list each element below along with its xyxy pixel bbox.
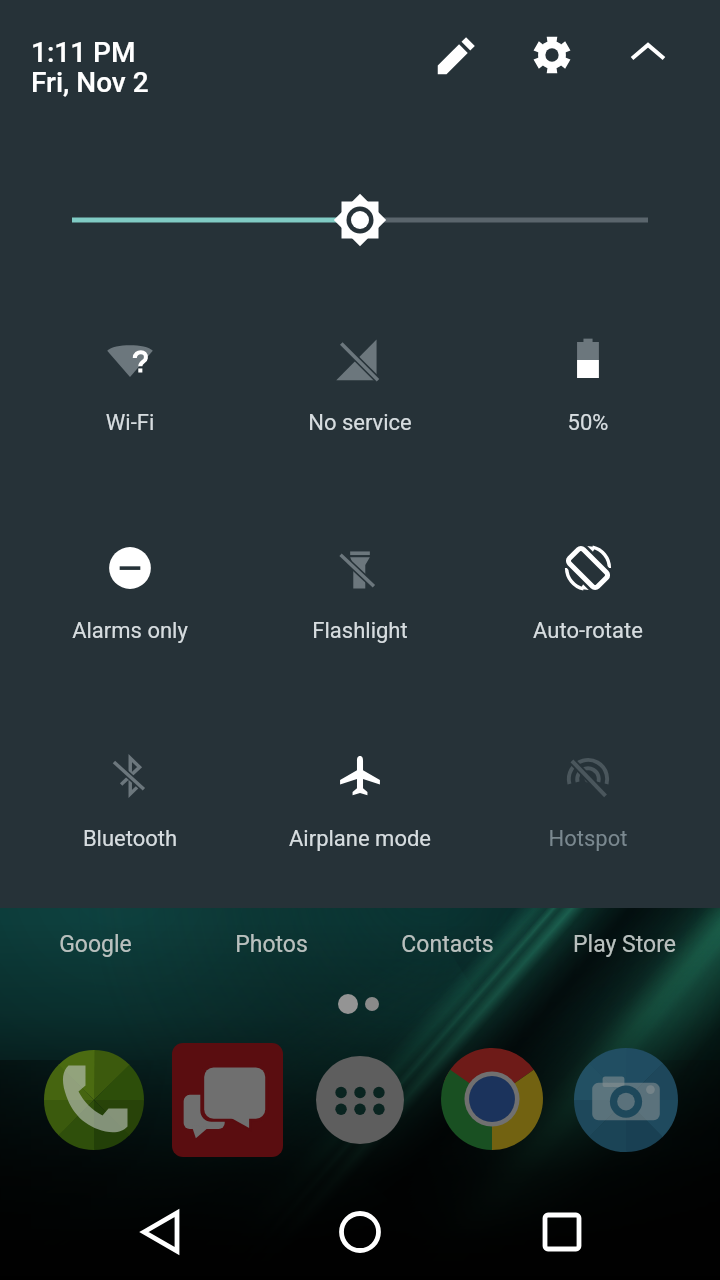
button[interactable]: Messaging: [172, 1043, 283, 1157]
staticText: 1:11 PM: [31, 36, 136, 69]
button[interactable]: No service: [255, 310, 465, 455]
staticText: Hotspot: [483, 826, 693, 852]
staticText: 50%: [483, 410, 693, 436]
button[interactable]: Apps: [316, 1056, 404, 1144]
button[interactable]: Phone: [44, 1050, 144, 1150]
button[interactable]: Alarms only: [25, 518, 235, 663]
button[interactable]: Recents: [514, 1184, 610, 1280]
button[interactable]: Hotspot: [483, 726, 693, 871]
staticText: Google: [59, 931, 132, 958]
button[interactable]: Bluetooth: [25, 726, 235, 871]
button[interactable]: Wi-Fi: [25, 310, 235, 455]
staticText: Contacts: [401, 931, 494, 958]
button[interactable]: Auto-rotate: [483, 518, 693, 663]
button[interactable]: Back: [120, 1184, 216, 1280]
button[interactable]: Edit: [422, 22, 490, 90]
button[interactable]: Airplane mode: [255, 726, 465, 871]
button[interactable]: Chrome: [441, 1048, 543, 1150]
button[interactable]: Collapse: [614, 20, 682, 88]
button[interactable]: Brightness: [0, 180, 720, 260]
staticText: Auto-rotate: [483, 618, 693, 644]
staticText: Flashlight: [255, 618, 465, 644]
button[interactable]: Google: [5, 924, 185, 964]
button[interactable]: Contacts: [357, 924, 537, 964]
button[interactable]: 50%: [483, 310, 693, 455]
staticText: Wi-Fi: [25, 410, 235, 436]
button[interactable]: Play Store: [534, 924, 714, 964]
staticText: Play Store: [573, 931, 676, 958]
button[interactable]: Photos: [181, 924, 361, 964]
staticText: Photos: [235, 931, 308, 958]
button[interactable]: Camera: [574, 1048, 678, 1152]
staticText: Bluetooth: [25, 826, 235, 852]
button[interactable]: Settings: [518, 21, 586, 89]
staticText: No service: [255, 410, 465, 436]
staticText: Alarms only: [25, 618, 235, 644]
staticText: Airplane mode: [255, 826, 465, 852]
button[interactable]: Home: [312, 1184, 408, 1280]
staticText: Fri, Nov 2: [31, 66, 149, 99]
button[interactable]: Flashlight: [255, 518, 465, 663]
